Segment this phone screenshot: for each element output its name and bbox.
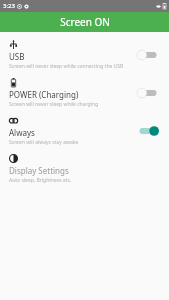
staticText: POWER (Charging) xyxy=(9,89,79,100)
staticText: Screen will never sleep while charging xyxy=(9,101,99,108)
button[interactable]: Power charging xyxy=(0,74,169,112)
staticText: Auto sleep, Brightness etc. xyxy=(9,177,72,184)
button[interactable]: Toggle off xyxy=(135,46,161,64)
other: Display settings xyxy=(9,154,18,163)
button[interactable]: Display settings xyxy=(0,150,169,188)
staticText: Display Settings xyxy=(9,165,69,176)
button[interactable]: USB xyxy=(0,36,169,74)
button[interactable]: Always xyxy=(0,112,169,150)
other: Power charging xyxy=(9,78,18,87)
button[interactable]: Toggle on xyxy=(135,122,161,140)
staticText: Screen will always stay awake xyxy=(9,139,79,146)
staticText: Always xyxy=(9,127,35,138)
staticText: 3:23 xyxy=(3,2,15,10)
other: Always xyxy=(9,116,18,125)
other: USB xyxy=(9,40,18,49)
staticText: Screen will never sleep while connecting… xyxy=(9,63,124,70)
staticText: USB xyxy=(9,51,25,62)
button[interactable]: Toggle off xyxy=(135,84,161,102)
staticText: Screen ON xyxy=(60,15,110,29)
